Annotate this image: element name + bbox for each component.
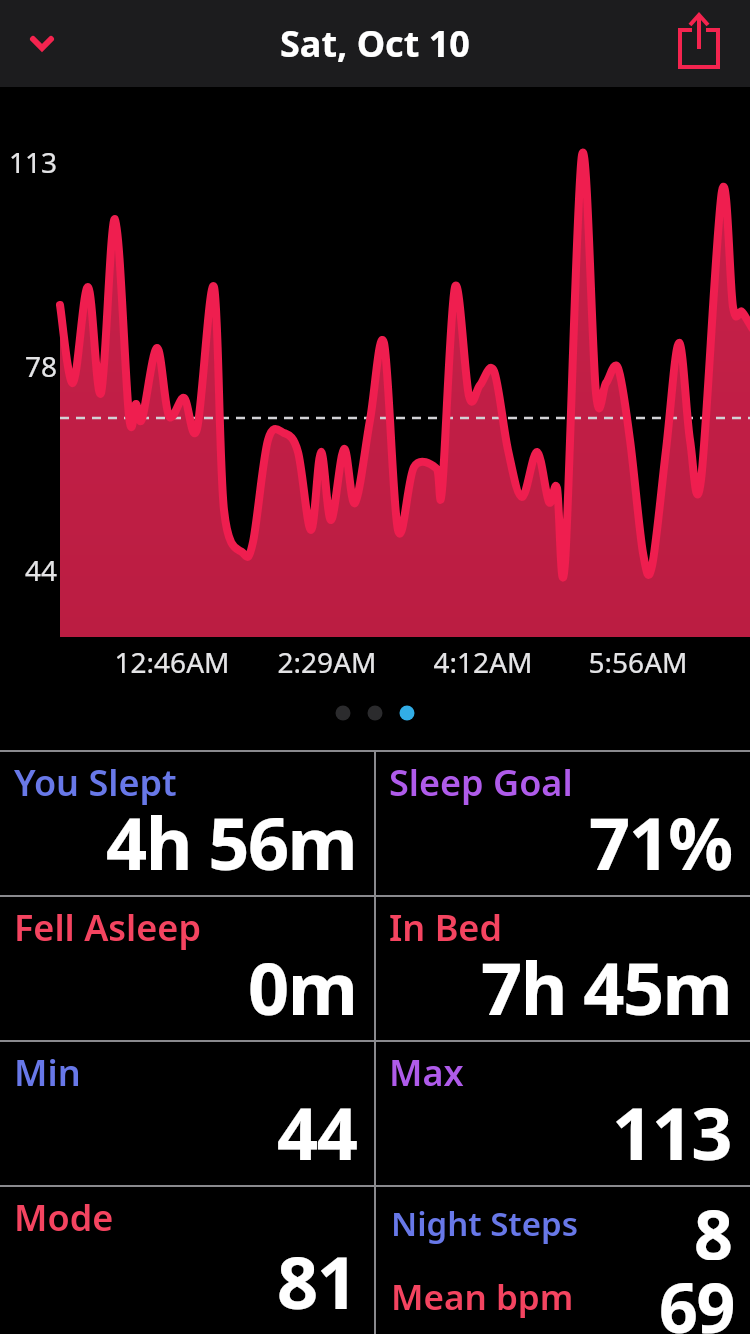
staticText: 81: [277, 1232, 357, 1330]
staticText: 113: [612, 1083, 732, 1181]
staticText: 44: [277, 1083, 357, 1181]
button[interactable]: Max: [375, 1042, 750, 1185]
staticText: You Slept: [14, 758, 177, 807]
staticText: Mode: [14, 1193, 114, 1242]
staticText: 12:46AM: [92, 643, 252, 681]
button[interactable]: You Slept: [0, 752, 375, 895]
staticText: 4:12AM: [403, 643, 563, 681]
staticText: 4h 56m: [106, 793, 357, 891]
button[interactable]: Night Steps: [375, 1187, 750, 1260]
staticText: 71%: [589, 793, 732, 891]
staticText: 44: [3, 551, 57, 589]
staticText: Max: [389, 1048, 464, 1097]
button[interactable]: [678, 10, 722, 70]
staticText: 78: [3, 347, 57, 385]
staticText: Mean bpm: [391, 1273, 574, 1321]
staticText: Min: [14, 1048, 81, 1097]
staticText: 2:29AM: [247, 643, 407, 681]
staticText: 5:56AM: [558, 643, 718, 681]
staticText: 69: [659, 1260, 734, 1334]
button[interactable]: [24, 26, 60, 62]
staticText: Sat, Oct 10: [280, 19, 470, 68]
staticText: In Bed: [389, 903, 502, 952]
button[interactable]: In Bed: [375, 897, 750, 1040]
button[interactable]: Mode: [0, 1187, 375, 1334]
button[interactable]: Mean bpm: [375, 1260, 750, 1334]
staticText: Night Steps: [391, 1201, 578, 1246]
staticText: Sleep Goal: [389, 758, 573, 807]
staticText: 113: [3, 143, 57, 181]
button[interactable]: Sleep Goal: [375, 752, 750, 895]
button[interactable]: Min: [0, 1042, 375, 1185]
staticText: 7h 45m: [481, 938, 732, 1036]
staticText: 8: [694, 1187, 732, 1260]
staticText: Fell Asleep: [14, 903, 201, 952]
staticText: 0m: [248, 938, 357, 1036]
button[interactable]: Fell Asleep: [0, 897, 375, 1040]
